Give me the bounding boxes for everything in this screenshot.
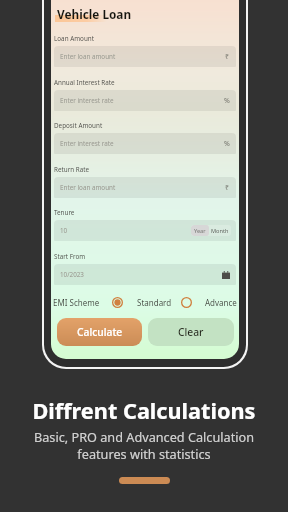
staticText: Clear [178, 325, 204, 339]
button[interactable]: Standard EMI scheme [112, 297, 123, 308]
staticText: Annual Interest Rate [54, 78, 115, 87]
staticText: Loan Amount [54, 34, 94, 43]
staticText: Enter interest rate [60, 139, 114, 148]
staticText: ₹ [225, 183, 230, 193]
staticText: Calculate [77, 325, 123, 339]
button[interactable]: Enter loan amount [54, 46, 236, 67]
staticText: Return Rate [54, 165, 90, 174]
staticText: Enter loan amount [60, 52, 116, 61]
staticText: % [224, 139, 230, 149]
button[interactable]: Clear [148, 318, 234, 346]
staticText: Deposit Amount [54, 121, 103, 130]
staticText: Enter interest rate [60, 96, 114, 105]
staticText: Diffrent Calculations [0, 396, 288, 426]
staticText: Basic, PRO and Advanced Calculation feat… [0, 428, 288, 463]
button[interactable]: Advance [205, 297, 237, 308]
staticText: % [224, 96, 230, 106]
staticText: Vehicle Loan [57, 6, 132, 22]
button[interactable]: Calculate [57, 318, 142, 346]
button[interactable]: Standard [137, 297, 172, 308]
button[interactable]: Enter interest rate [54, 133, 236, 154]
button[interactable]: Enter interest rate [54, 90, 236, 111]
staticText: Year [194, 227, 206, 235]
staticText: Enter loan amount [60, 183, 116, 192]
button[interactable]: Advance EMI scheme [181, 297, 192, 308]
staticText: 10 [60, 226, 68, 235]
staticText: ₹ [225, 52, 230, 62]
button[interactable]: Enter loan amount [54, 177, 236, 198]
staticText: 10/2023 [60, 270, 84, 279]
staticText: Start From [54, 252, 86, 261]
button[interactable]: Year [191, 225, 209, 236]
button[interactable]: Month [209, 225, 231, 236]
button[interactable]: 10/2023 [54, 264, 236, 285]
staticText: Tenure [54, 208, 75, 217]
staticText: EMI Scheme [53, 297, 100, 308]
other: Pick date [222, 271, 230, 279]
staticText: Month [211, 227, 229, 235]
button[interactable]: 10 [54, 220, 236, 241]
